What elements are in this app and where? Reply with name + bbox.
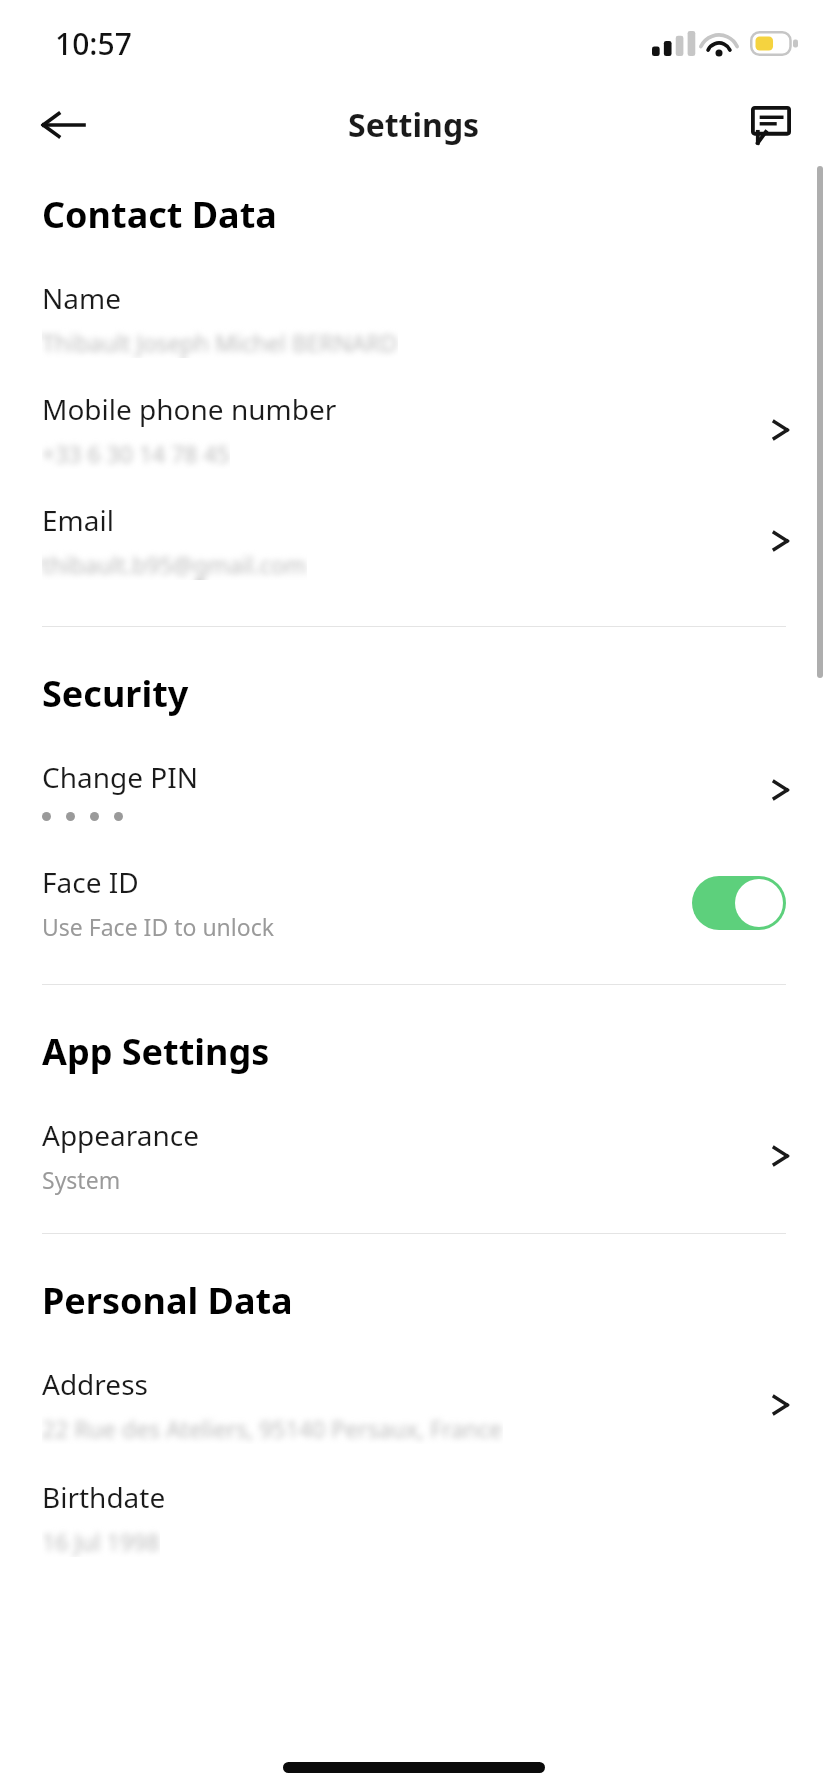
button[interactable]: Name — [0, 279, 828, 358]
staticText: Birthdate — [42, 1478, 166, 1516]
staticText: Use Face ID to unlock — [42, 911, 274, 942]
button[interactable]: Messages — [734, 88, 808, 162]
button[interactable]: Mobile phone number — [0, 390, 828, 469]
button[interactable]: Address — [0, 1365, 828, 1444]
button[interactable]: Face ID toggle, on — [692, 876, 786, 930]
button[interactable]: Birthdate — [0, 1478, 828, 1557]
staticText: Thibault Joseph Michel BERNARD — [42, 327, 398, 358]
staticText: Personal Data — [42, 1276, 828, 1325]
staticText: 10:57 — [55, 23, 132, 64]
staticText: Mobile phone number — [42, 390, 337, 428]
staticText: Face ID — [42, 863, 139, 901]
button[interactable]: Back — [26, 88, 100, 162]
staticText: Address — [42, 1365, 148, 1403]
staticText: System — [42, 1164, 121, 1195]
button[interactable]: Email — [0, 501, 828, 580]
staticText: Security — [42, 669, 828, 718]
staticText: 16 Jul 1998 — [42, 1526, 160, 1557]
staticText: +33 6 30 14 78 45 — [42, 438, 230, 469]
staticText: Name — [42, 279, 121, 317]
button[interactable]: Change PIN — [0, 758, 828, 821]
staticText: Change PIN — [42, 758, 199, 796]
staticText: Email — [42, 501, 114, 539]
staticText: Settings — [348, 103, 480, 147]
staticText: Appearance — [42, 1116, 200, 1154]
staticText: 22 Rue des Ateliers, 95140 Persaux, Fran… — [42, 1413, 503, 1444]
button[interactable]: Appearance — [0, 1116, 828, 1195]
staticText: App Settings — [42, 1027, 828, 1076]
button[interactable]: Face ID — [0, 863, 828, 942]
staticText: thibault.b95@gmail.com — [42, 549, 307, 580]
staticText: Contact Data — [42, 190, 828, 239]
